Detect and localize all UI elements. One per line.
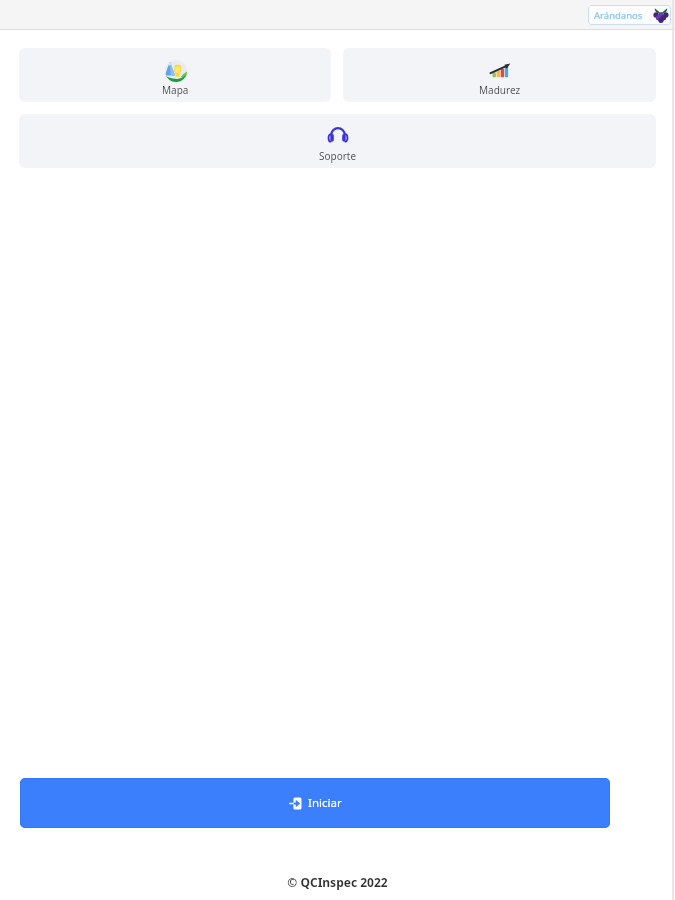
button[interactable]: Soporte bbox=[19, 114, 656, 168]
other: Soporte bbox=[327, 126, 349, 148]
staticText: Iniciar bbox=[308, 795, 342, 811]
other: Madurez bbox=[489, 60, 511, 82]
staticText: Soporte bbox=[319, 149, 357, 163]
staticText: Arándanos bbox=[594, 9, 643, 22]
button[interactable]: Iniciar bbox=[20, 778, 610, 828]
staticText: Mapa bbox=[162, 83, 189, 97]
staticText: Madurez bbox=[479, 83, 521, 97]
button[interactable]: Arándanos bbox=[588, 5, 671, 25]
button[interactable]: Madurez bbox=[343, 48, 656, 102]
other: Mapa bbox=[165, 60, 187, 82]
staticText: © QCInspec 2022 bbox=[0, 874, 675, 890]
button[interactable]: Mapa bbox=[19, 48, 331, 102]
